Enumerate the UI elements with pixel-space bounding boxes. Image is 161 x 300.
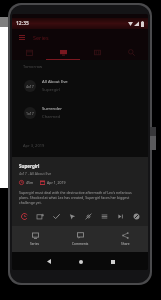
staticText: Share [121, 242, 130, 246]
staticText: Comments [72, 242, 89, 246]
staticText: 12:35 [16, 20, 29, 27]
button[interactable]: Add to list [99, 211, 109, 221]
button[interactable]: Watch history [19, 211, 29, 221]
staticText: Charmed [42, 114, 61, 120]
button[interactable]: Search [114, 44, 148, 60]
staticText: Supergirl [19, 163, 40, 169]
button[interactable]: Home [75, 256, 86, 267]
staticText: 4x17 [26, 84, 34, 89]
button[interactable]: Comments [58, 226, 103, 252]
button[interactable]: Open navigation drawer [16, 32, 27, 43]
staticText: Surrender [42, 106, 62, 112]
button[interactable]: Series [12, 226, 58, 252]
button[interactable]: Calendar [12, 44, 46, 60]
button[interactable]: Add to collection [35, 211, 45, 221]
staticText: Series [33, 34, 49, 41]
button[interactable]: Back [43, 256, 54, 267]
button[interactable]: Movies [80, 44, 114, 60]
button[interactable]: Hide [83, 211, 93, 221]
staticText: Apr 3, 2019 [23, 143, 45, 148]
button[interactable]: Recent apps [107, 256, 118, 267]
staticText: All About Eve [42, 79, 68, 85]
staticText: Supergirl [42, 87, 60, 93]
staticText: Tomorrow [23, 64, 43, 69]
button[interactable]: Skip episode [115, 211, 125, 221]
button[interactable]: 4x17 [12, 72, 148, 99]
button[interactable]: Check in [67, 211, 77, 221]
button[interactable]: Shows [46, 44, 80, 60]
button[interactable]: Not interested [131, 211, 141, 221]
staticText: 45m [26, 180, 34, 185]
staticText: Apr 1, 2019 [47, 180, 66, 185]
staticText: Supergirl must deal with the destructive… [19, 190, 141, 205]
button[interactable]: Mark as watched [51, 211, 61, 221]
button[interactable]: Share [103, 226, 148, 252]
staticText: 1x17 [26, 111, 34, 116]
staticText: 4x17 - All About Eve [19, 171, 52, 176]
button[interactable]: 1x17 [12, 99, 148, 126]
staticText: Series [30, 242, 40, 246]
